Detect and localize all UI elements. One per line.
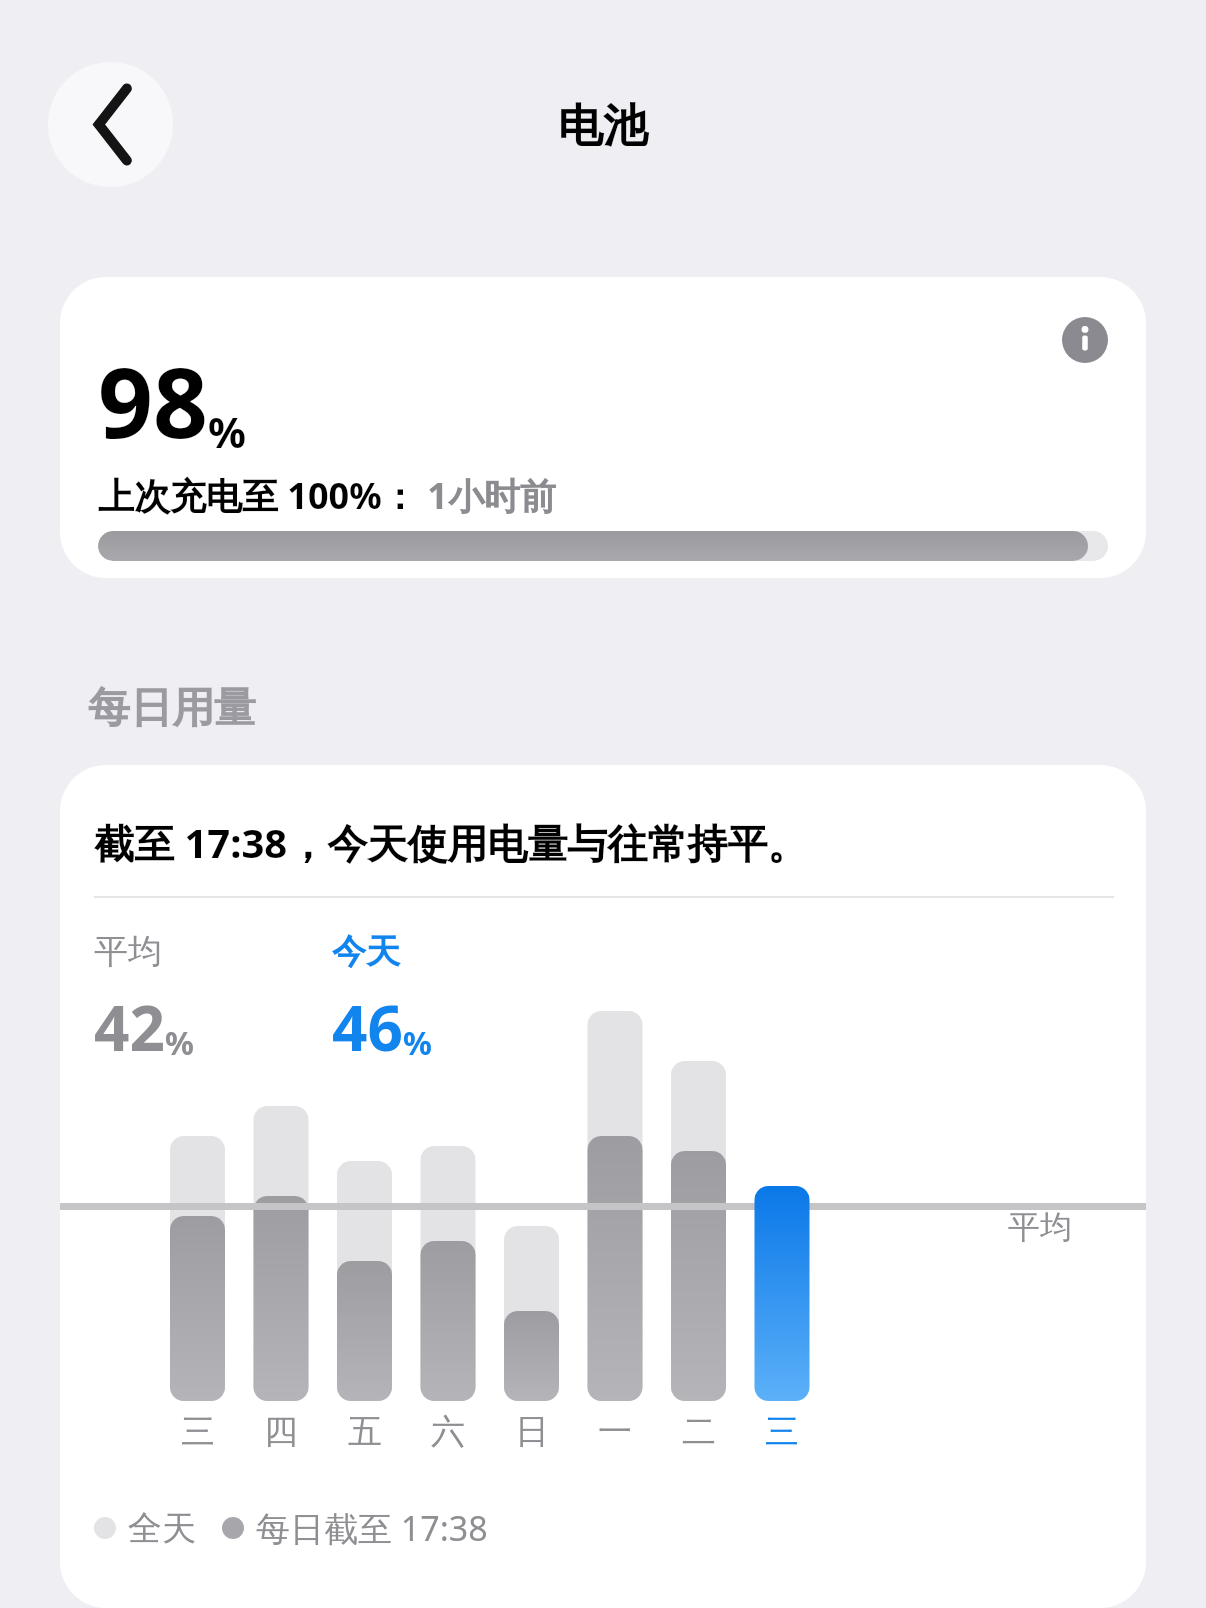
staticText: 六: [431, 1410, 465, 1453]
staticText: 二: [682, 1410, 716, 1453]
staticText: 1小时前: [418, 471, 556, 520]
staticText: %: [208, 403, 246, 460]
staticText: 三: [765, 1410, 799, 1453]
button[interactable]: Info: [1062, 317, 1108, 363]
staticText: 平均: [1008, 1207, 1072, 1247]
staticText: 五: [348, 1410, 382, 1453]
staticText: 今天: [332, 930, 400, 973]
staticText: 98: [98, 335, 208, 466]
staticText: 平均: [94, 930, 162, 973]
staticText: 一: [598, 1410, 632, 1453]
staticText: 46: [332, 985, 403, 1069]
staticText: 截至 17:38，今天使用电量与往常持平。: [94, 815, 808, 870]
staticText: 电池: [558, 98, 648, 155]
button[interactable]: Back: [48, 62, 173, 187]
staticText: 42: [94, 985, 165, 1069]
staticText: 三: [181, 1410, 215, 1453]
staticText: 上次充电至 100%：: [98, 471, 418, 520]
staticText: 全天: [128, 1507, 196, 1550]
staticText: 每日用量: [88, 682, 256, 735]
staticText: 日: [515, 1410, 549, 1453]
staticText: 每日截至 17:38: [256, 1505, 488, 1551]
staticText: %: [165, 1021, 194, 1065]
staticText: 四: [264, 1410, 298, 1453]
staticText: %: [403, 1021, 432, 1065]
